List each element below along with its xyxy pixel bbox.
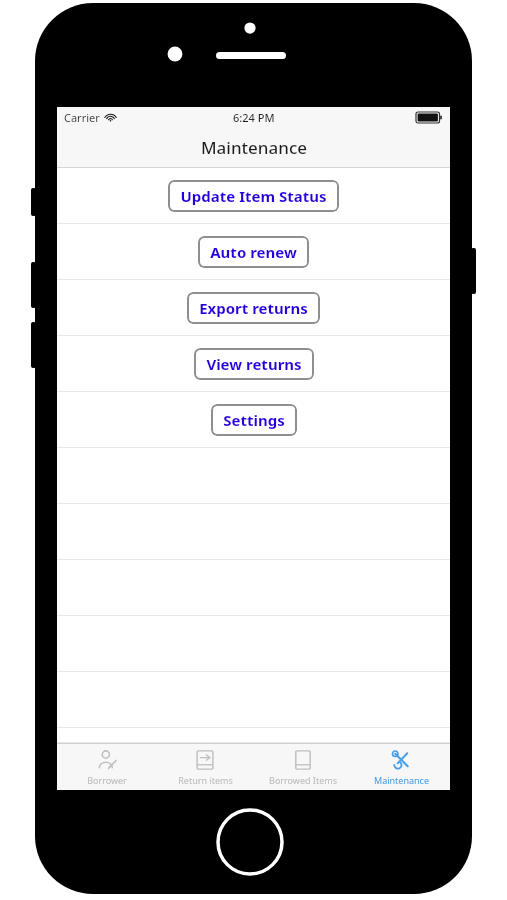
button[interactable]: Export returns	[187, 292, 320, 324]
staticText: View returns	[206, 354, 302, 374]
staticText: Settings	[223, 410, 285, 430]
staticText: Borrowed Items	[269, 774, 337, 786]
button[interactable]: Borrowed Items	[254, 744, 352, 790]
staticText: Maintenance	[374, 774, 429, 786]
button[interactable]: Borrower	[57, 744, 156, 790]
staticText: Update Item Status	[180, 186, 327, 206]
staticText: Export returns	[199, 298, 308, 318]
button[interactable]: Return items	[156, 744, 254, 790]
staticText: Borrower	[87, 774, 127, 786]
staticText: Auto renew	[210, 242, 297, 262]
staticText: Carrier	[64, 110, 100, 125]
button[interactable]: Maintenance	[352, 744, 450, 790]
button[interactable]: Update Item Status	[168, 180, 339, 212]
staticText: Maintenance	[201, 136, 307, 159]
button[interactable]: Auto renew	[198, 236, 309, 268]
button[interactable]: Settings	[211, 404, 297, 436]
staticText: Return items	[178, 774, 233, 786]
button[interactable]: View returns	[194, 348, 314, 380]
staticText: 6:24 PM	[233, 110, 275, 125]
